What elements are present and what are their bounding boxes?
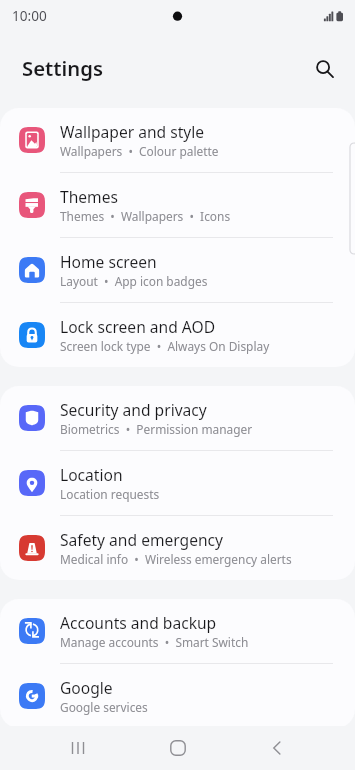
button[interactable]: Lock screen and AOD xyxy=(0,303,355,367)
staticText: Wallpaper and style xyxy=(60,121,205,142)
button[interactable]: Search xyxy=(305,51,345,91)
staticText: Wallpapers • Colour palette xyxy=(60,143,219,159)
button[interactable]: Accounts and backup xyxy=(0,599,355,664)
staticText: Settings xyxy=(22,54,103,82)
button[interactable]: Safety and emergency xyxy=(0,516,355,580)
button[interactable]: Location xyxy=(0,451,355,516)
staticText: Location requests xyxy=(60,486,160,502)
staticText: Accounts and backup xyxy=(60,612,217,633)
button[interactable]: Home screen xyxy=(0,238,355,303)
staticText: Biometrics • Permission manager xyxy=(60,421,253,437)
button[interactable]: Wallpaper and style xyxy=(0,108,355,173)
staticText: Location xyxy=(60,464,123,485)
staticText: Themes xyxy=(60,186,118,207)
staticText: Security and privacy xyxy=(60,399,207,420)
staticText: Lock screen and AOD xyxy=(60,316,216,337)
button[interactable]: Security and privacy xyxy=(0,386,355,451)
staticText: Manage accounts • Smart Switch xyxy=(60,634,249,650)
staticText: Google services xyxy=(60,699,148,715)
staticText: Screen lock type • Always On Display xyxy=(60,338,270,354)
button[interactable]: Google xyxy=(0,664,355,728)
staticText: Home screen xyxy=(60,251,157,272)
staticText: Medical info • Wireless emergency alerts xyxy=(60,551,292,567)
button[interactable]: Home xyxy=(158,728,198,768)
staticText: 10:00 xyxy=(12,6,47,25)
staticText: Google xyxy=(60,677,113,698)
staticText: Layout • App icon badges xyxy=(60,273,208,289)
button[interactable]: Recents xyxy=(58,728,98,768)
staticText: Themes • Wallpapers • Icons xyxy=(60,208,231,224)
staticText: Safety and emergency xyxy=(60,529,224,550)
button[interactable]: Themes xyxy=(0,173,355,238)
button[interactable]: Back xyxy=(257,728,297,768)
